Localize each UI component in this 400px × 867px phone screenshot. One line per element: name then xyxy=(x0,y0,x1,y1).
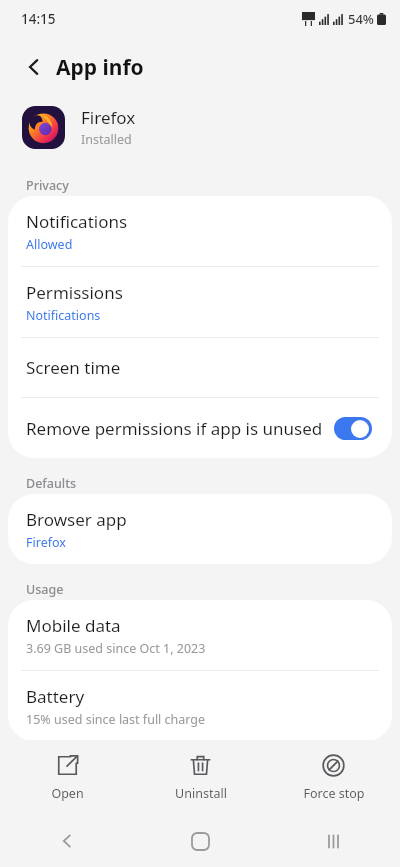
button[interactable]: Uninstall xyxy=(134,754,267,802)
staticText: Battery xyxy=(26,685,85,708)
staticText: Notifications xyxy=(26,307,101,324)
button[interactable]: Open xyxy=(0,754,134,802)
staticText: Permissions xyxy=(26,281,123,304)
staticText: Privacy xyxy=(26,177,69,194)
button[interactable]: Back xyxy=(0,815,134,867)
staticText: Browser app xyxy=(26,508,127,531)
button[interactable]: Browser app xyxy=(8,494,392,564)
staticText: Screen time xyxy=(26,356,121,379)
button[interactable]: Permissions xyxy=(8,267,392,337)
button[interactable]: Recent apps xyxy=(267,815,400,867)
button[interactable]: Screen time xyxy=(8,338,392,397)
staticText: Defaults xyxy=(26,475,77,492)
staticText: Open xyxy=(51,785,84,802)
button[interactable]: Back xyxy=(14,47,54,87)
staticText: 15% used since last full charge xyxy=(26,711,206,728)
staticText: Uninstall xyxy=(175,785,227,802)
staticText: App info xyxy=(56,53,144,82)
staticText: Firefox xyxy=(81,106,136,129)
button[interactable]: Home xyxy=(134,815,267,867)
staticText: Firefox xyxy=(26,534,66,551)
button[interactable]: Force stop xyxy=(267,754,400,802)
staticText: 54% xyxy=(348,10,374,28)
staticText: Force stop xyxy=(303,785,365,802)
button[interactable]: Notifications xyxy=(8,196,392,266)
button[interactable]: Battery xyxy=(8,671,392,741)
staticText: Remove permissions if app is unused xyxy=(26,417,334,440)
button[interactable]: Firefox xyxy=(0,96,400,158)
staticText: Mobile data xyxy=(26,614,121,637)
staticText: Installed xyxy=(81,131,132,148)
staticText: Allowed xyxy=(26,236,73,253)
staticText: 3.69 GB used since Oct 1, 2023 xyxy=(26,640,206,657)
button[interactable]: Remove permissions if app is unused xyxy=(8,398,392,458)
other: Remove permissions toggle xyxy=(334,417,372,440)
button[interactable]: Mobile data xyxy=(8,600,392,670)
staticText: 14:15 xyxy=(21,10,56,28)
staticText: Usage xyxy=(26,581,64,598)
staticText: Notifications xyxy=(26,210,128,233)
